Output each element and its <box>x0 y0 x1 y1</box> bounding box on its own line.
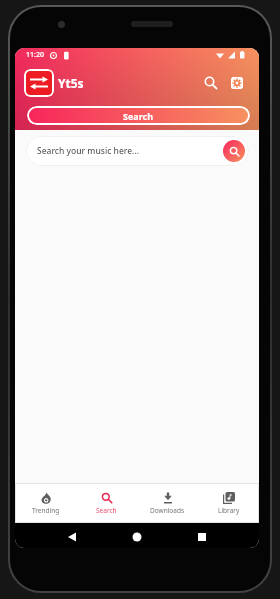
staticText: Yt5s <box>58 75 84 91</box>
button[interactable] <box>201 73 221 93</box>
staticText: Search your music here... <box>37 145 140 157</box>
button[interactable]: Search <box>27 106 250 125</box>
staticText: Trending <box>32 506 60 515</box>
staticText: 11:20 <box>26 50 44 60</box>
staticText: Search <box>123 110 154 122</box>
button[interactable] <box>223 140 245 162</box>
staticText: Library <box>218 506 240 515</box>
button[interactable]: Trending <box>15 483 76 523</box>
button[interactable]: Library <box>198 483 259 523</box>
button[interactable] <box>24 69 54 97</box>
staticText: Downloads <box>150 506 185 515</box>
button[interactable]: Search <box>76 483 137 523</box>
button[interactable]: Search your music here... <box>26 136 249 166</box>
staticText: Search <box>96 506 117 515</box>
button[interactable] <box>227 73 247 93</box>
button[interactable]: Downloads <box>137 483 198 523</box>
